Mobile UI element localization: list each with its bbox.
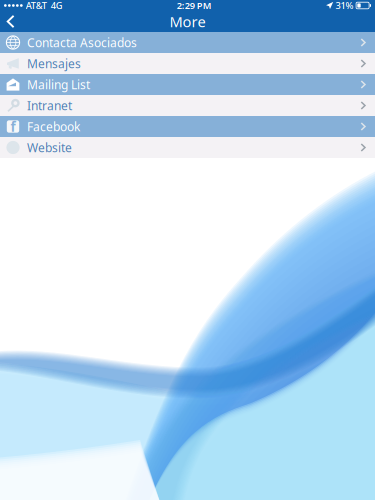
button[interactable]: Back [0,12,27,31]
staticText: Mensajes [27,55,81,71]
staticText: AT&T [26,0,47,12]
button[interactable]: Mensajes [0,53,375,74]
staticText: 31% [336,0,354,12]
staticText: Intranet [27,97,72,113]
staticText: More [169,12,205,31]
button[interactable]: Mailing List [0,74,375,95]
staticText: 4G [51,0,63,12]
staticText: Contacta Asociados [27,34,137,50]
staticText: 2:29 PM [177,0,212,12]
button[interactable]: Contacta Asociados [0,32,375,53]
staticText: Facebook [27,118,80,134]
button[interactable]: f [0,116,375,137]
staticText: Website [27,139,72,155]
button[interactable]: Website [0,137,375,158]
staticText: Mailing List [27,76,90,92]
staticText: f [10,118,15,135]
button[interactable]: Intranet [0,95,375,116]
